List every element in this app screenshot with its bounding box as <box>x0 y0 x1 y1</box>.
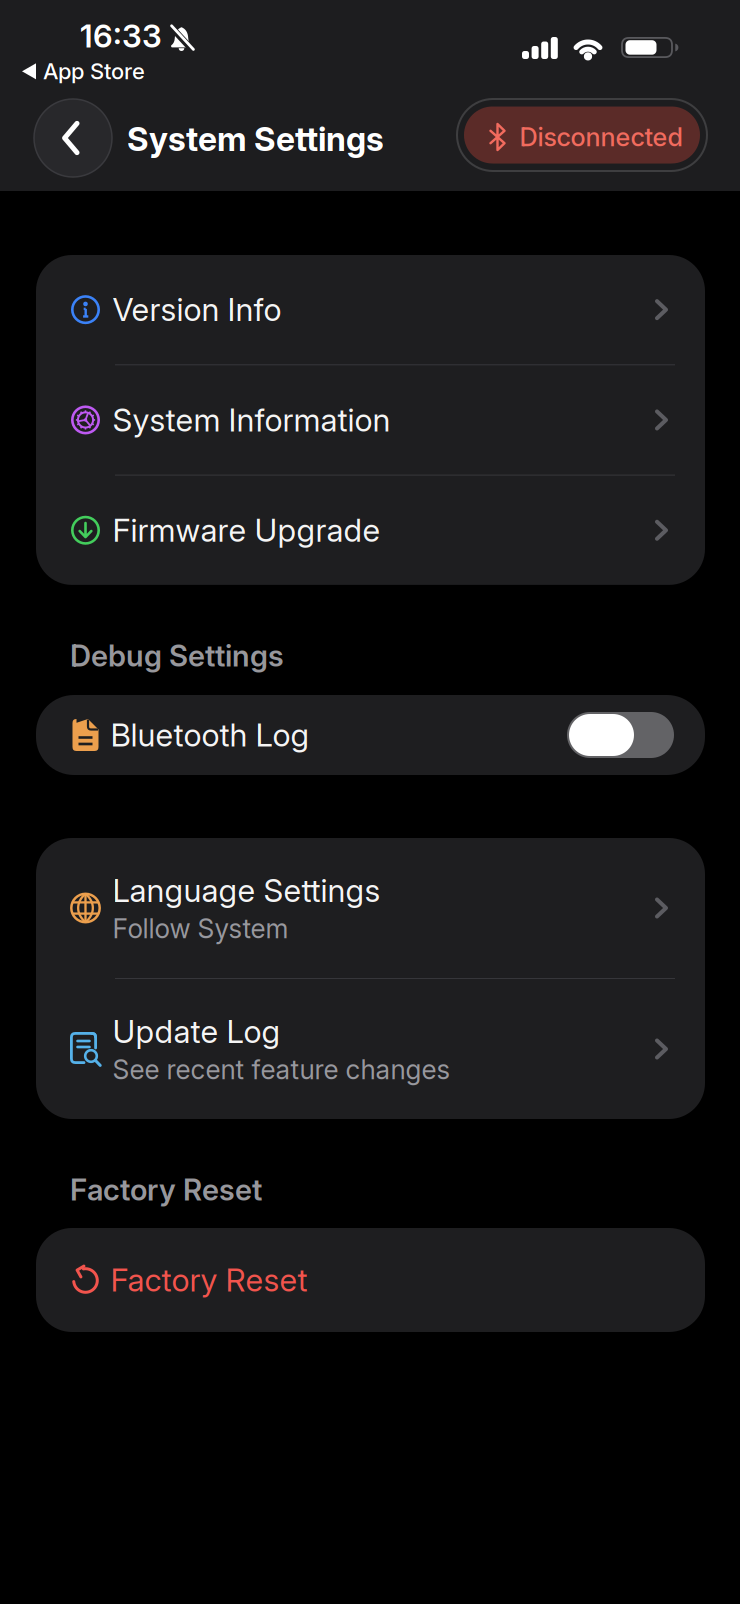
button[interactable]: Disconnected <box>457 99 707 171</box>
staticText: Factory Reset <box>70 1172 262 1208</box>
staticText: Update Log <box>112 1012 280 1050</box>
staticText: Bluetooth Log <box>110 716 309 754</box>
button[interactable]: Bluetooth Log <box>36 695 705 775</box>
staticText: App Store <box>43 58 145 85</box>
staticText: System Information <box>112 401 390 439</box>
button[interactable]: System Information <box>36 365 705 475</box>
staticText: 16:33 <box>80 17 162 55</box>
button[interactable]: Language Settings <box>36 838 705 978</box>
button[interactable]: Firmware Upgrade <box>36 476 705 585</box>
staticText: Debug Settings <box>70 638 284 674</box>
staticText: System Settings <box>127 119 384 159</box>
staticText: Disconnected <box>519 122 682 152</box>
staticText: Firmware Upgrade <box>112 511 380 549</box>
button[interactable]: Update Log <box>36 979 705 1119</box>
staticText: Follow System <box>112 912 288 945</box>
button[interactable]: App Store <box>22 58 145 85</box>
staticText: Factory Reset <box>110 1261 307 1299</box>
staticText: See recent feature changes <box>112 1053 450 1086</box>
button[interactable]: Back <box>34 99 112 177</box>
button[interactable]: Factory Reset <box>36 1228 705 1332</box>
button[interactable]: Version Info <box>36 255 705 364</box>
staticText: Version Info <box>112 291 281 329</box>
staticText: Language Settings <box>112 871 380 909</box>
